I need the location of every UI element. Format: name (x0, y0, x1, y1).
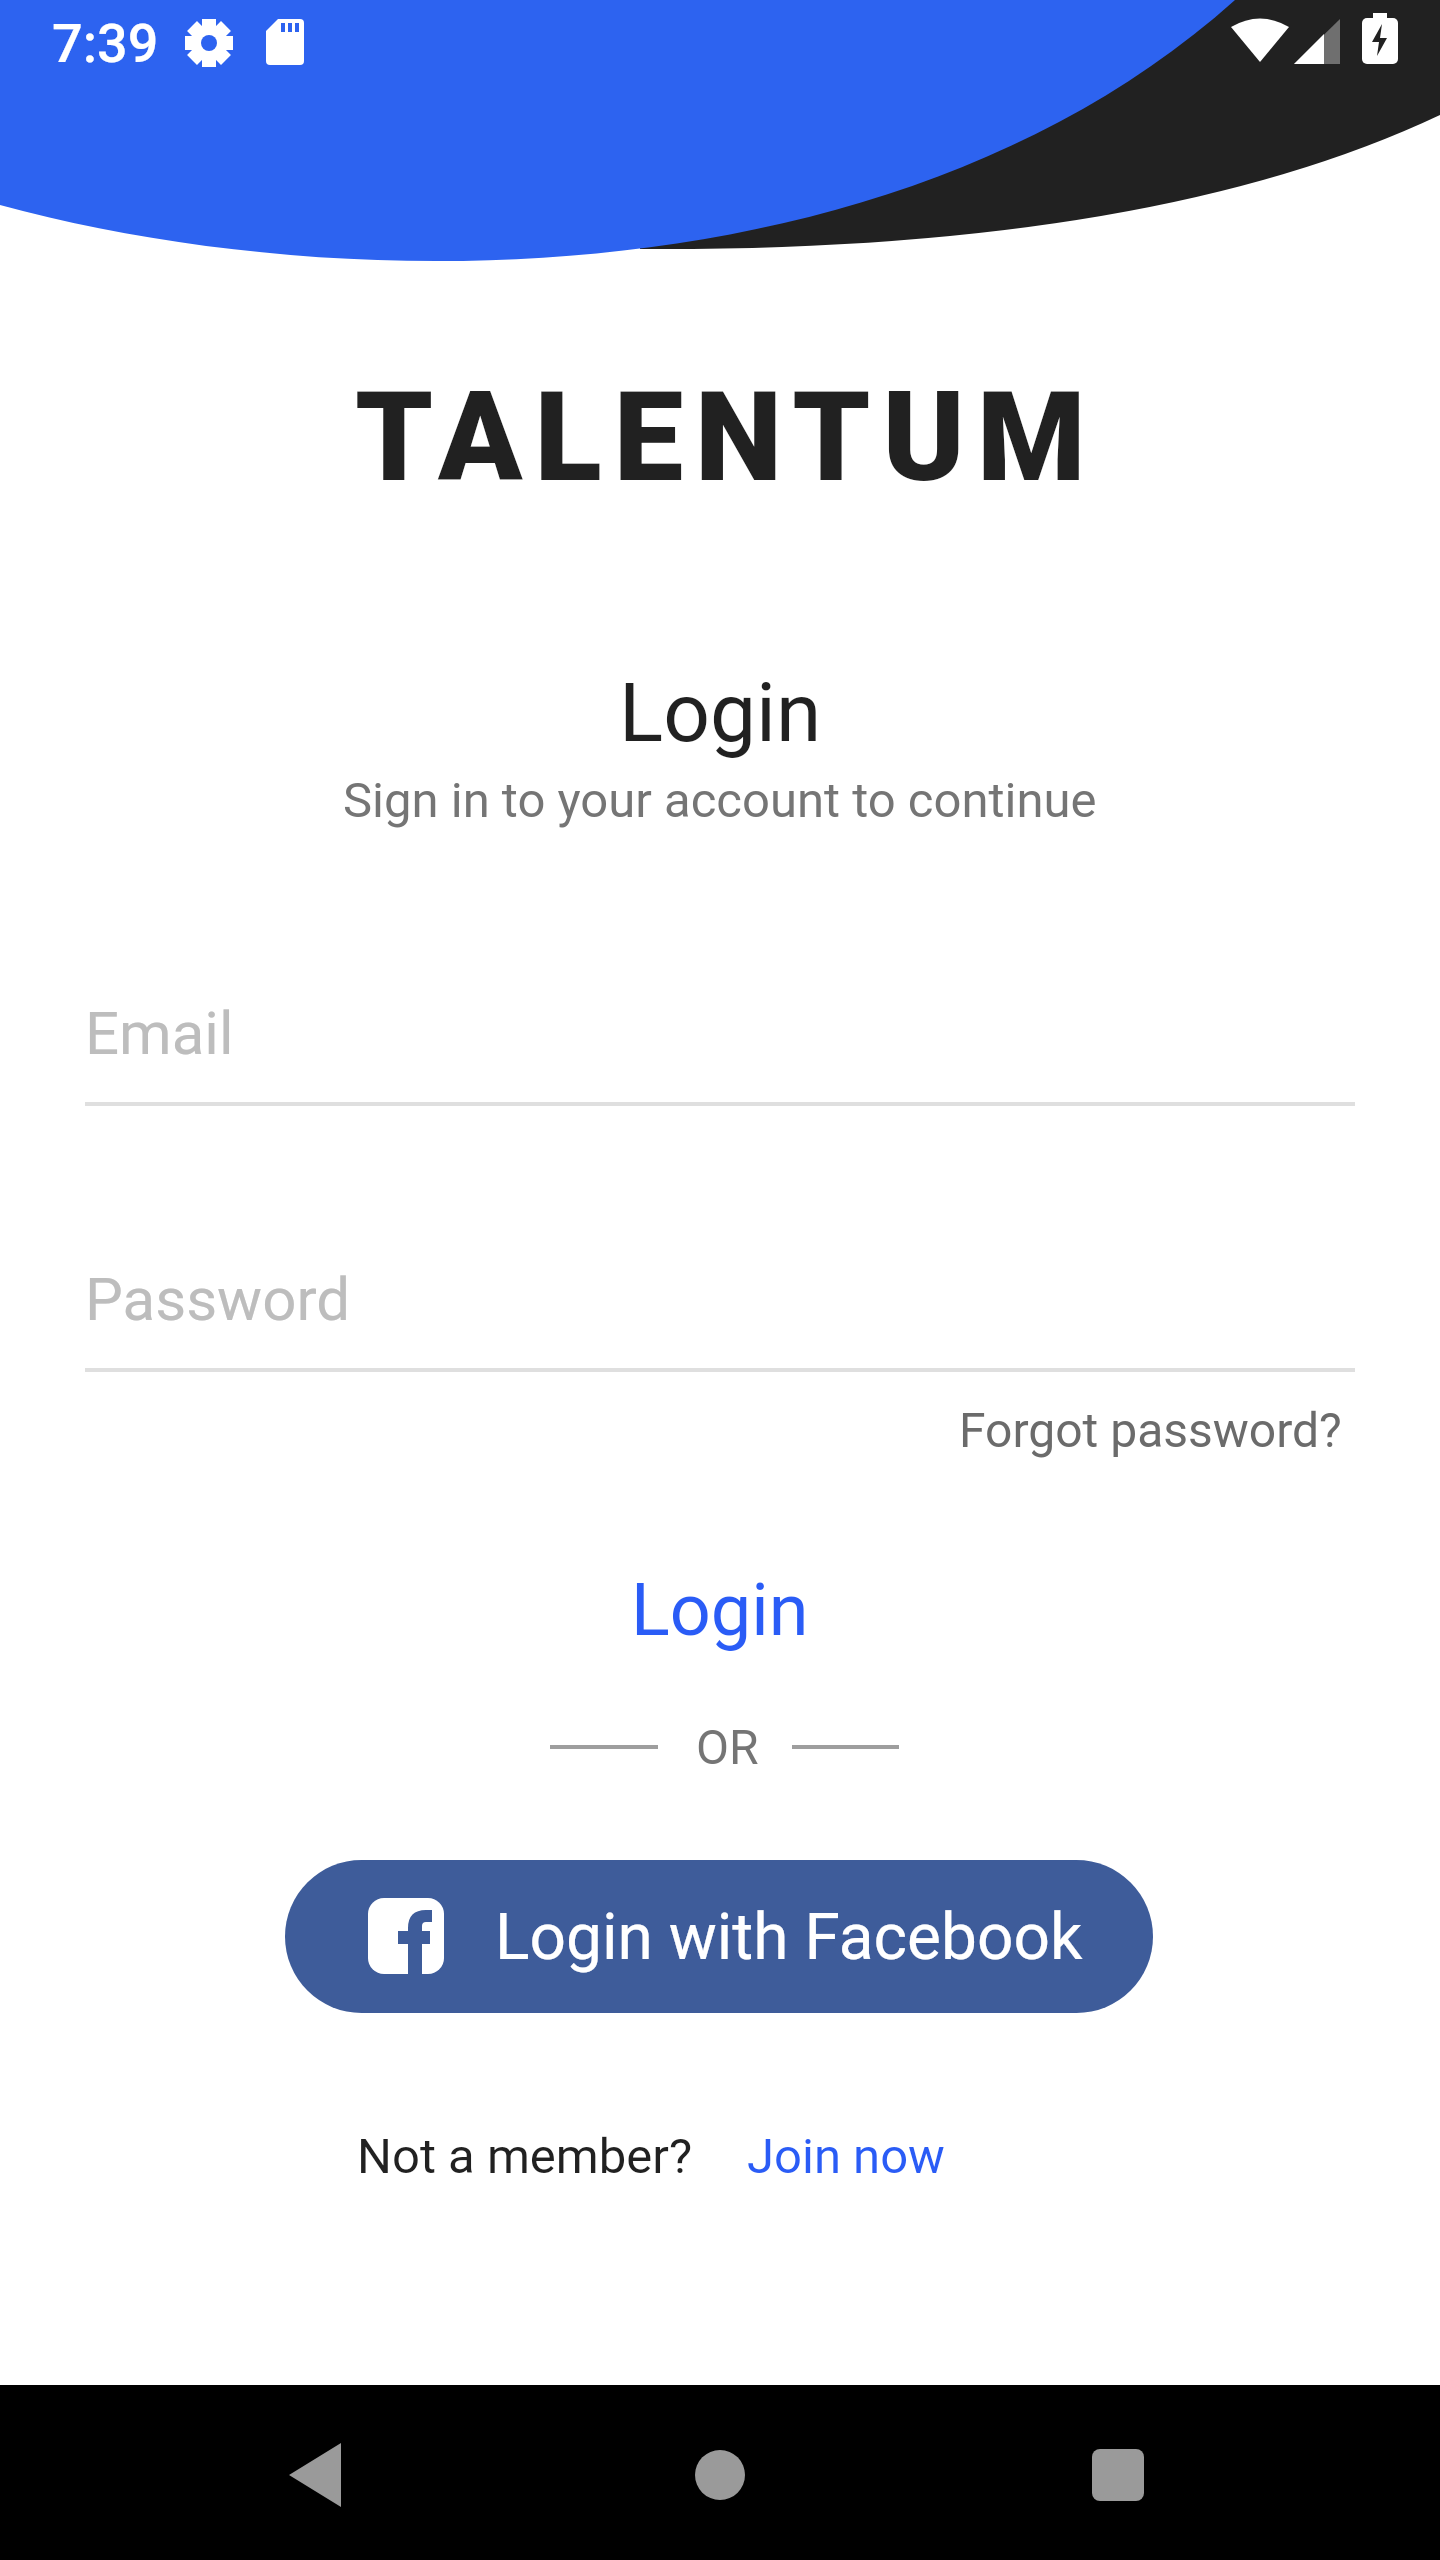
staticText: Login with Facebook (495, 1900, 1083, 1975)
staticText: Password (85, 1264, 351, 1334)
staticText: OR (696, 1719, 759, 1775)
button[interactable] (670, 2425, 770, 2525)
button[interactable]: Email (85, 990, 1355, 1106)
button[interactable]: Login with Facebook (285, 1860, 1153, 2013)
button[interactable]: Login (631, 1568, 809, 1652)
button[interactable]: Join now (747, 2128, 945, 2185)
staticText: Email (85, 998, 234, 1068)
button[interactable]: Password (85, 1256, 1355, 1372)
staticText: Join now (747, 2128, 945, 2185)
staticText: Sign in to your account to continue (343, 772, 1097, 829)
staticText: TALENTUM (355, 365, 1098, 510)
button[interactable] (1068, 2425, 1168, 2525)
staticText: Not a member? (357, 2128, 693, 2185)
staticText: Login (619, 665, 822, 761)
staticText: 7:39 (52, 12, 159, 75)
staticText: Login (631, 1568, 809, 1652)
button[interactable] (265, 2425, 365, 2525)
staticText: Forgot password? (959, 1402, 1342, 1458)
button[interactable]: Forgot password? (1057, 1402, 1440, 1458)
